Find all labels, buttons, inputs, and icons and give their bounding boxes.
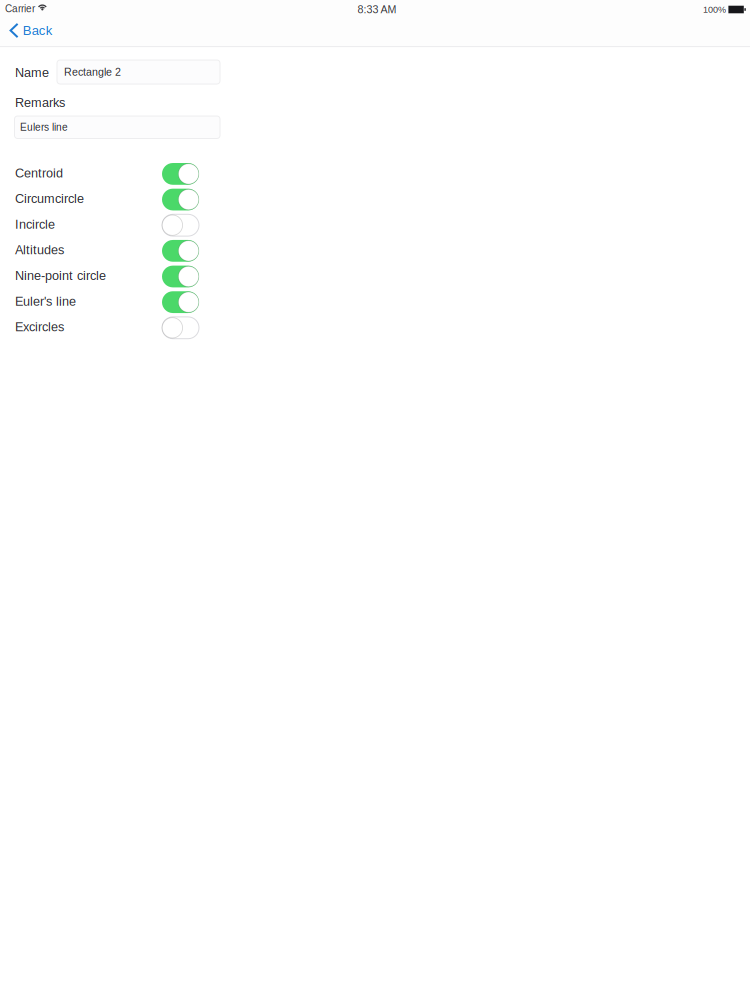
button[interactable]: Centroid, on	[162, 163, 199, 185]
button[interactable]: Altitudes, on	[162, 240, 199, 262]
button[interactable]: Eulers line	[14, 116, 220, 138]
staticText: Nine-point circle	[15, 268, 106, 283]
button[interactable]: Nine-point circle, on	[162, 266, 199, 287]
button[interactable]: Excircles, off	[162, 317, 199, 339]
button[interactable]: Incircle, off	[162, 214, 199, 236]
button[interactable]: Rectangle 2	[57, 60, 220, 84]
staticText: 100%	[703, 4, 726, 14]
staticText: Altitudes	[15, 243, 64, 257]
staticText: Carrier	[5, 3, 35, 14]
staticText: Name	[15, 65, 49, 80]
staticText: Euler's line	[15, 294, 76, 308]
staticText: 8:33 AM	[357, 3, 396, 15]
staticText: Centroid	[15, 166, 63, 180]
staticText: Remarks	[15, 95, 65, 110]
staticText: Excircles	[15, 320, 64, 334]
staticText: Back	[23, 23, 53, 38]
button[interactable]: Circumcircle, on	[162, 189, 199, 210]
staticText: Rectangle 2	[64, 66, 121, 78]
staticText: Circumcircle	[15, 192, 84, 206]
button[interactable]: Euler's line, on	[162, 291, 199, 313]
button[interactable]: Back	[2, 18, 62, 43]
staticText: Incircle	[15, 217, 55, 231]
staticText: Eulers line	[20, 122, 68, 133]
